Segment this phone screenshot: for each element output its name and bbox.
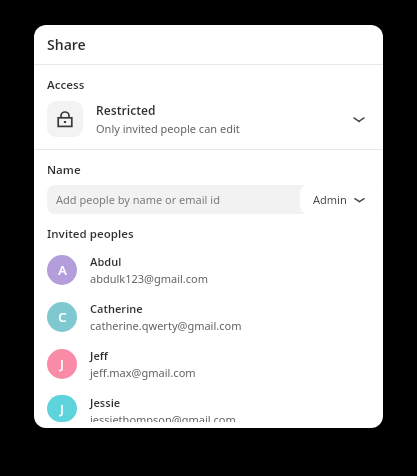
staticText: J — [60, 400, 64, 418]
button[interactable]: Add people by name or email id — [47, 185, 378, 214]
button[interactable]: J — [34, 342, 383, 386]
staticText: A — [58, 261, 67, 279]
staticText: jeff.max@gmail.com — [90, 365, 196, 380]
staticText: C — [58, 308, 67, 326]
staticText: Invited peoples — [47, 226, 134, 242]
staticText: jessiethompson@gmail.com — [90, 412, 236, 422]
button[interactable]: Restricted — [34, 101, 383, 137]
staticText: Abdul — [90, 254, 122, 269]
staticText: Add people by name or email id — [56, 192, 220, 207]
staticText: Catherine — [90, 301, 143, 316]
staticText: Jeff — [90, 348, 108, 363]
staticText: Restricted — [96, 102, 156, 118]
button[interactable]: C — [34, 295, 383, 339]
staticText: Name — [47, 162, 81, 178]
button[interactable]: A — [34, 248, 383, 292]
staticText: Access — [47, 77, 85, 93]
button[interactable]: Admin — [300, 185, 378, 214]
staticText: J — [60, 355, 64, 373]
staticText: Share — [47, 35, 86, 54]
staticText: abdulk123@gmail.com — [90, 271, 209, 286]
other: Expand access options — [348, 108, 370, 130]
button[interactable]: J — [34, 389, 383, 428]
staticText: Jessie — [90, 395, 121, 410]
staticText: Admin — [313, 192, 347, 207]
staticText: Only invited people can edit — [96, 121, 240, 136]
staticText: catherine.qwerty@gmail.com — [90, 318, 242, 333]
